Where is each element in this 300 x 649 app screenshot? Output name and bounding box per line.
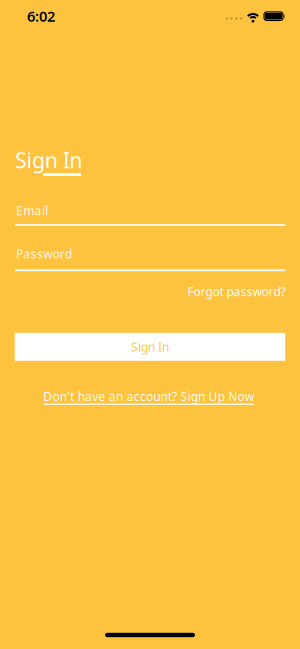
button[interactable]: Sign In bbox=[15, 333, 285, 361]
staticText: Password bbox=[16, 246, 72, 262]
staticText: Don't have an account? Sign Up Now bbox=[43, 388, 254, 404]
staticText: Sign In bbox=[131, 339, 169, 355]
staticText: Email bbox=[16, 202, 48, 218]
button[interactable]: Don't have an account? Sign Up Now bbox=[42, 387, 254, 407]
staticText: Forgot password? bbox=[187, 283, 285, 299]
staticText: 6:02 bbox=[27, 6, 55, 26]
button[interactable]: Email bbox=[15, 203, 285, 227]
button[interactable]: Forgot password? bbox=[187, 283, 285, 299]
staticText: Sign In bbox=[15, 146, 82, 174]
button[interactable]: Password bbox=[15, 246, 285, 272]
